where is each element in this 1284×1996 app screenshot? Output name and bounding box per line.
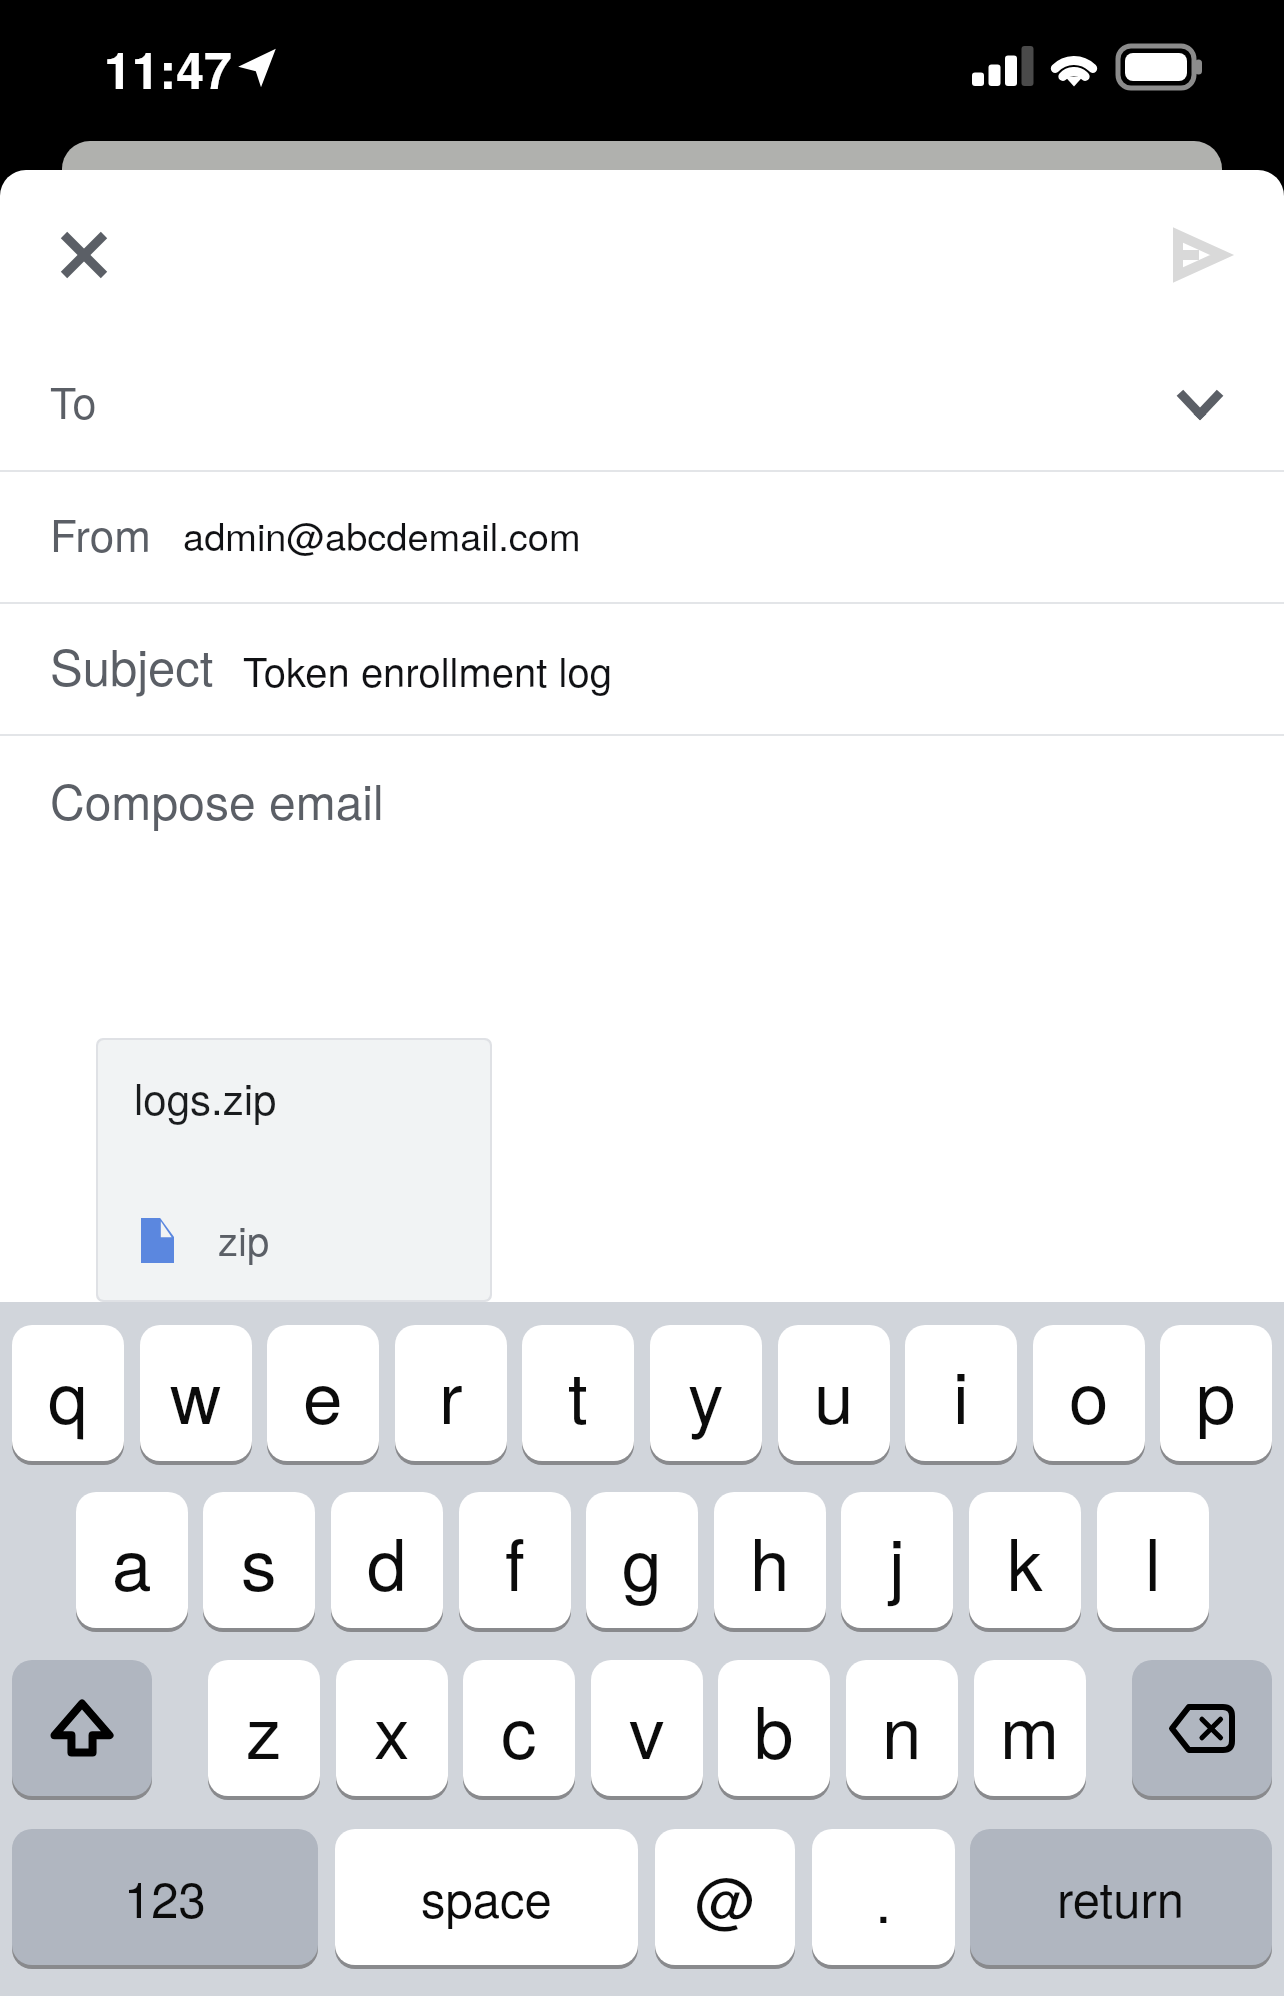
button[interactable]: j	[841, 1492, 953, 1628]
staticText: p	[1196, 1342, 1236, 1444]
button[interactable]: g	[586, 1492, 698, 1628]
staticText: Compose email	[50, 765, 384, 834]
staticText: a	[112, 1509, 152, 1611]
staticText: e	[303, 1342, 343, 1444]
button[interactable]	[98, 1040, 490, 1300]
button[interactable]: f	[459, 1492, 571, 1628]
button[interactable]: @	[655, 1829, 795, 1965]
button[interactable]: r	[395, 1325, 507, 1461]
staticText: f	[505, 1509, 525, 1611]
button[interactable]: e	[267, 1325, 379, 1461]
staticText: i	[953, 1342, 969, 1444]
staticText: b	[754, 1677, 794, 1779]
staticText: space	[421, 1862, 552, 1932]
staticText: s	[241, 1509, 277, 1611]
button[interactable]: z	[208, 1660, 320, 1796]
staticText: r	[439, 1342, 463, 1444]
staticText: o	[1069, 1342, 1109, 1444]
staticText: c	[501, 1677, 537, 1779]
staticText: logs.zip	[134, 1067, 277, 1127]
staticText: n	[882, 1677, 922, 1779]
staticText: l	[1145, 1509, 1161, 1611]
button[interactable]: o	[1033, 1325, 1145, 1461]
button[interactable]: c	[463, 1660, 575, 1796]
staticText: To	[50, 370, 97, 432]
button[interactable]: y	[650, 1325, 762, 1461]
staticText: return	[1057, 1862, 1185, 1932]
staticText: Subject	[50, 630, 214, 700]
button[interactable]: Close	[39, 210, 129, 300]
button[interactable]: h	[714, 1492, 826, 1628]
button[interactable]: l	[1097, 1492, 1209, 1628]
staticText: t	[568, 1342, 588, 1444]
button[interactable]: Backspace	[1132, 1660, 1272, 1796]
button[interactable]: w	[140, 1325, 252, 1461]
button[interactable]: Shift	[12, 1660, 152, 1796]
button[interactable]	[0, 301, 1284, 470]
staticText: zip	[218, 1210, 270, 1267]
staticText: d	[367, 1509, 407, 1611]
staticText: 11:47	[104, 33, 232, 105]
button[interactable]: m	[974, 1660, 1086, 1796]
staticText: g	[622, 1509, 662, 1611]
staticText: 123	[124, 1862, 206, 1932]
button[interactable]: p	[1160, 1325, 1272, 1461]
button[interactable]: x	[336, 1660, 448, 1796]
button[interactable]: t	[522, 1325, 634, 1461]
staticText: q	[48, 1342, 88, 1444]
staticText: .	[875, 1854, 892, 1940]
staticText: w	[170, 1342, 222, 1444]
button[interactable]: d	[331, 1492, 443, 1628]
staticText: y	[688, 1342, 724, 1444]
button[interactable]: i	[905, 1325, 1017, 1461]
button[interactable]: b	[718, 1660, 830, 1796]
staticText: u	[814, 1342, 854, 1444]
staticText: x	[374, 1677, 410, 1779]
button[interactable]: a	[76, 1492, 188, 1628]
button[interactable]: Show more recipient fields	[1150, 355, 1250, 455]
staticText: j	[889, 1509, 905, 1611]
button[interactable]: 123	[12, 1829, 318, 1965]
staticText: Token enrollment log	[243, 641, 612, 698]
button[interactable]: return	[970, 1829, 1272, 1965]
staticText: v	[629, 1677, 665, 1779]
staticText: z	[246, 1677, 282, 1779]
button[interactable]: v	[591, 1660, 703, 1796]
staticText: m	[1000, 1677, 1060, 1779]
staticText: @	[695, 1854, 756, 1940]
button[interactable]: s	[203, 1492, 315, 1628]
button[interactable]	[0, 604, 1284, 734]
button[interactable]	[0, 736, 1284, 1036]
button[interactable]: u	[778, 1325, 890, 1461]
staticText: admin@abcdemail.com	[183, 507, 581, 561]
staticText: h	[750, 1509, 790, 1611]
button[interactable]	[0, 472, 1284, 602]
button[interactable]: q	[12, 1325, 124, 1461]
button[interactable]: k	[969, 1492, 1081, 1628]
button[interactable]: n	[846, 1660, 958, 1796]
staticText: From	[50, 501, 151, 564]
staticText: k	[1007, 1509, 1043, 1611]
button[interactable]: space	[335, 1829, 638, 1965]
button[interactable]: Send	[1154, 210, 1244, 300]
button[interactable]: .	[812, 1829, 955, 1965]
